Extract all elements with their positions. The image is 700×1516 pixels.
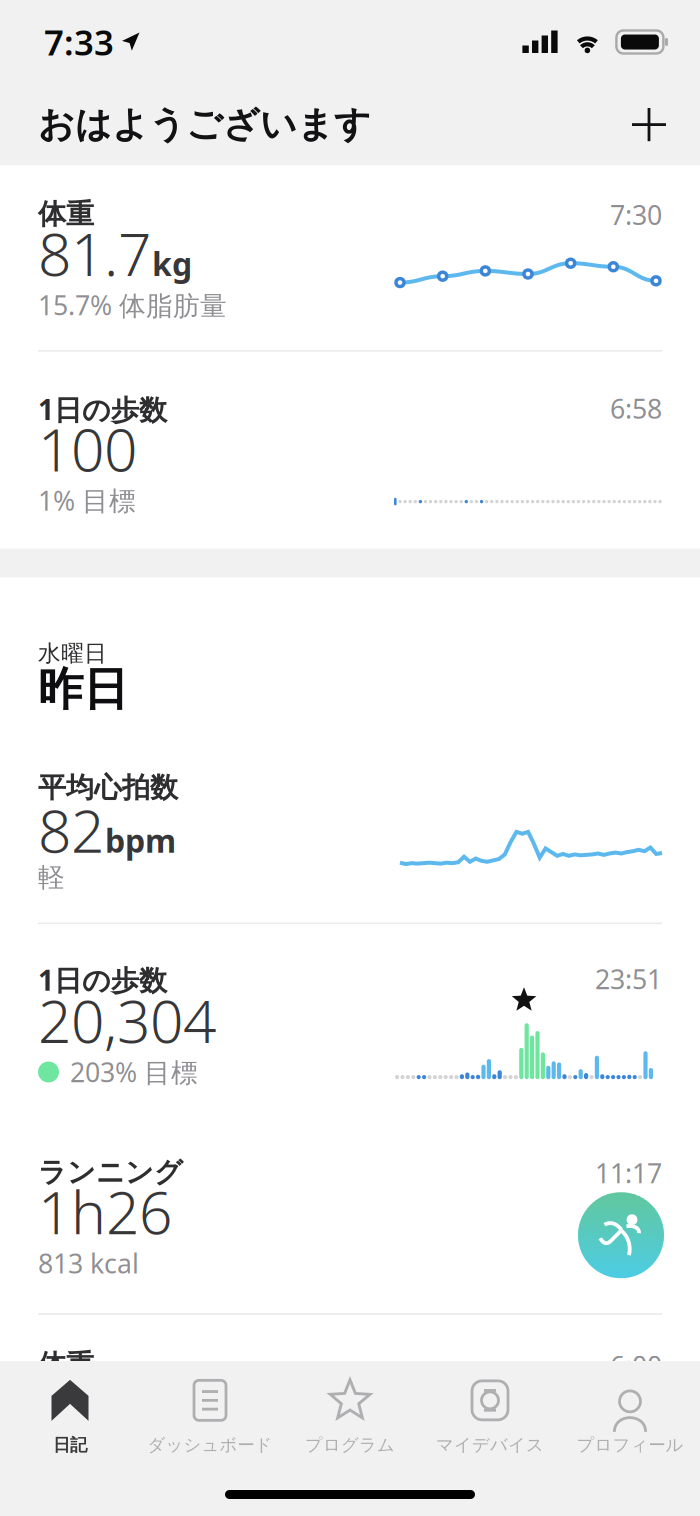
button[interactable]: ダッシュボード [140, 1374, 280, 1460]
button[interactable]: 体重 [38, 1315, 662, 1405]
staticText: マイデバイス [436, 1434, 544, 1456]
staticText: 体重 [38, 1348, 94, 1382]
staticText: 軽 [38, 861, 65, 894]
staticText: 81.7 [38, 214, 151, 292]
staticText: 平均心拍数 [38, 771, 178, 805]
staticText: 813 kcal [38, 1245, 139, 1281]
button[interactable]: Add [620, 96, 678, 153]
staticText: 100 [38, 410, 137, 488]
staticText: bpm [105, 819, 176, 861]
staticText: ランニング [38, 1155, 183, 1190]
staticText: 1% 目標 [38, 483, 136, 518]
staticText: プロフィール [576, 1434, 683, 1456]
button[interactable]: マイデバイス [420, 1374, 560, 1460]
staticText: 6:00 [610, 1348, 662, 1383]
staticText: 体重 [38, 197, 94, 231]
staticText: kg [152, 242, 192, 285]
staticText: 6:58 [610, 391, 662, 426]
staticText: おはようございます [38, 102, 371, 147]
button[interactable]: 1日の歩数 [38, 352, 662, 549]
staticText: 7:33 [44, 19, 114, 65]
button[interactable]: 体重 [38, 165, 662, 350]
button[interactable]: ランニング [38, 1117, 662, 1313]
staticText: 20,304 [38, 981, 216, 1059]
staticText: 水曜日 [38, 640, 107, 667]
staticText: 15.7% 体脂肪量 [38, 287, 227, 323]
staticText: 昨日 [38, 661, 128, 717]
button[interactable]: 1日の歩数 [38, 924, 662, 1117]
staticText: 1日の歩数 [38, 961, 167, 998]
staticText: ダッシュボード [147, 1434, 272, 1456]
staticText: 1h26 [38, 1173, 172, 1250]
staticText: 1日の歩数 [38, 391, 167, 428]
staticText: 7:30 [610, 197, 662, 232]
button[interactable]: プログラム [280, 1374, 420, 1460]
staticText: プログラム [305, 1434, 395, 1456]
button[interactable]: 日記 [0, 1374, 140, 1460]
staticText: 203% 目標 [70, 1054, 198, 1090]
staticText: 23:51 [595, 961, 662, 997]
staticText: 82 [38, 791, 104, 869]
staticText: 日記 [53, 1434, 87, 1456]
button[interactable]: 平均心拍数 [38, 746, 662, 923]
button[interactable]: プロフィール [560, 1374, 700, 1460]
staticText: 11:17 [595, 1155, 662, 1191]
